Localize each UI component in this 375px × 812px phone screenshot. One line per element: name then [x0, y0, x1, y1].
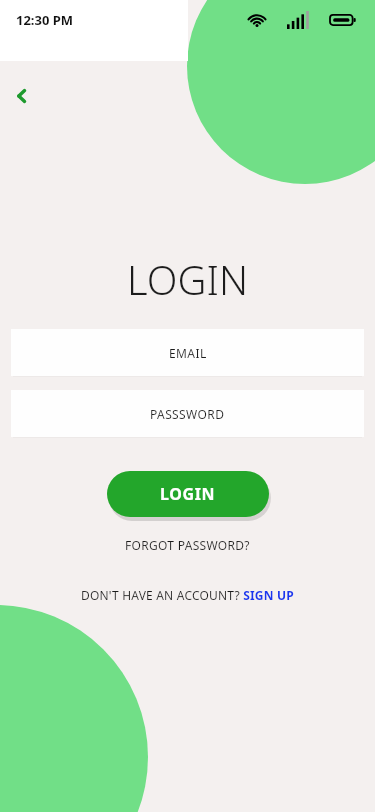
other: Battery — [330, 13, 356, 27]
button[interactable]: Back — [4, 78, 40, 114]
button[interactable]: EMAIL — [11, 329, 364, 376]
staticText: 12:30 PM — [16, 11, 74, 29]
button[interactable]: PASSSWORD — [11, 390, 364, 437]
other: Wi-Fi — [247, 10, 267, 30]
button[interactable]: FORGOT PASSWORD? — [119, 535, 256, 555]
staticText: DON'T HAVE AN ACCOUNT? SIGN UP — [81, 587, 294, 603]
button[interactable]: DON'T HAVE AN ACCOUNT? SIGN UP — [75, 585, 300, 605]
staticText: LOGIN — [127, 252, 249, 306]
other: Signal strength — [287, 11, 311, 29]
staticText: PASSSWORD — [150, 406, 225, 422]
staticText: LOGIN — [160, 483, 216, 505]
button[interactable]: LOGIN — [107, 471, 269, 517]
staticText: EMAIL — [169, 345, 207, 361]
staticText: FORGOT PASSWORD? — [125, 537, 250, 553]
